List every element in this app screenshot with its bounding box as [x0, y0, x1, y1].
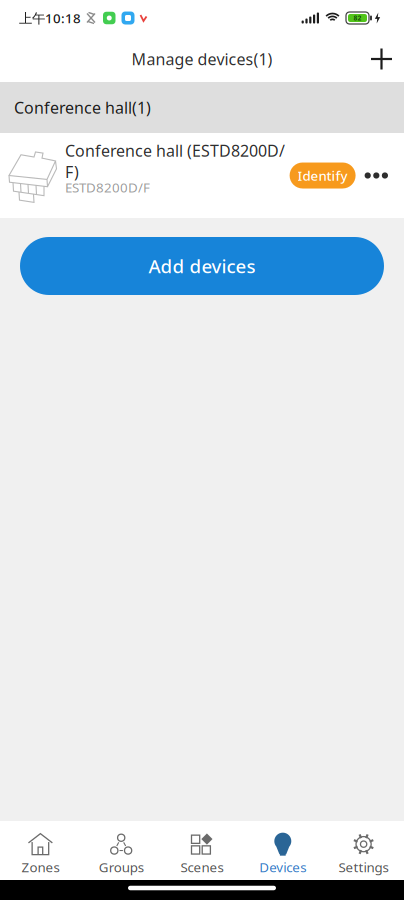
staticText: Scenes	[180, 858, 223, 876]
button[interactable]: Zones	[0, 821, 81, 879]
staticText: Add devices	[148, 254, 255, 278]
staticText: Groups	[99, 858, 144, 876]
button[interactable]: Add device	[361, 40, 404, 77]
staticText: Conference hall(1)	[14, 97, 151, 118]
staticText: Zones	[21, 858, 59, 876]
staticText: Conference hall (ESTD8200D/ F)	[65, 140, 285, 182]
button[interactable]: Groups	[81, 821, 162, 879]
staticText: 上午10:18	[19, 9, 81, 27]
button[interactable]: Devices	[242, 821, 323, 879]
button[interactable]: Conference hall (ESTD8200D/ F)	[0, 133, 404, 218]
staticText: 82	[353, 14, 361, 22]
button[interactable]: Settings	[323, 821, 404, 879]
staticText: Settings	[339, 858, 389, 876]
button[interactable]: Scenes	[162, 821, 242, 879]
staticText: Identify	[298, 167, 348, 184]
button[interactable]: Add devices	[20, 237, 384, 295]
button[interactable]: More	[356, 162, 404, 189]
staticText: Manage devices(1)	[131, 48, 272, 70]
staticText: ESTD8200D/F	[65, 178, 150, 196]
staticText: Devices	[259, 858, 306, 876]
button[interactable]: Identify	[290, 162, 356, 188]
